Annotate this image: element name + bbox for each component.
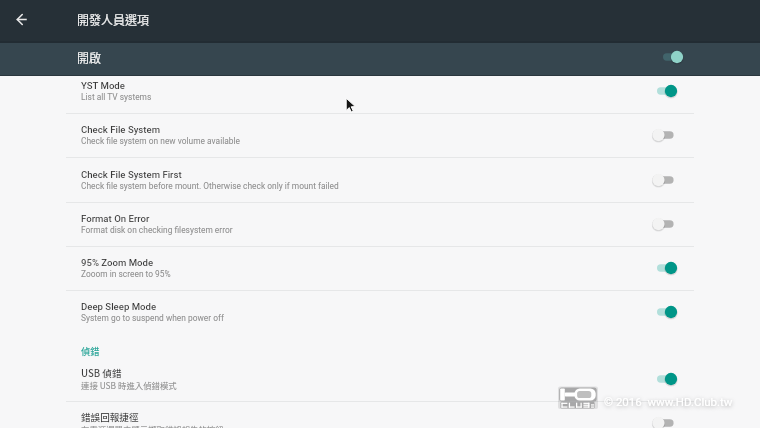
staticText: 開發人員選項 bbox=[77, 11, 150, 28]
button[interactable]: Toggle developer options bbox=[649, 39, 691, 74]
button[interactable]: Deep Sleep Mode bbox=[0, 290, 760, 334]
button[interactable]: Format On Error bbox=[0, 202, 760, 246]
staticText: 連接 USB 時進入偵錯模式 bbox=[81, 379, 177, 391]
staticText: 開啟 bbox=[77, 49, 102, 66]
button[interactable]: 錯誤回報捷徑 bbox=[0, 401, 760, 428]
staticText: © 2016 www.HD.Club.tw bbox=[604, 395, 733, 408]
button[interactable]: Format On Error bbox=[643, 202, 685, 246]
staticText: YST Mode bbox=[81, 80, 125, 91]
button[interactable]: Check File System bbox=[0, 113, 760, 157]
button[interactable]: Deep Sleep Mode bbox=[643, 290, 685, 334]
staticText: List all TV systems bbox=[81, 92, 152, 102]
staticText: 95% Zoom Mode bbox=[81, 257, 154, 268]
staticText: Check file system on new volume availabl… bbox=[81, 136, 240, 146]
staticText: Format disk on checking filesystem error bbox=[81, 225, 233, 235]
staticText: Format On Error bbox=[81, 213, 150, 224]
button[interactable]: Check File System First bbox=[0, 158, 760, 202]
staticText: Check File System First bbox=[81, 169, 182, 180]
staticText: USB 偵錯 bbox=[81, 366, 122, 380]
staticText: System go to suspend when power off bbox=[81, 313, 224, 323]
button[interactable]: Check File System First bbox=[643, 158, 685, 202]
button[interactable]: YST Mode bbox=[0, 69, 760, 113]
staticText: Deep Sleep Mode bbox=[81, 301, 157, 312]
staticText: Check File System bbox=[81, 124, 160, 135]
staticText: Zooom in screen to 95% bbox=[81, 269, 171, 279]
staticText: Check file system before mount. Otherwis… bbox=[81, 181, 339, 191]
button[interactable]: USB 偵錯 bbox=[643, 357, 685, 401]
staticText: 在電源選單中顯示擷取錯誤報告的按鈕 bbox=[81, 423, 224, 428]
button[interactable]: USB 偵錯 bbox=[0, 357, 760, 401]
button[interactable]: Check File System bbox=[643, 113, 685, 157]
button[interactable]: 95% Zoom Mode bbox=[0, 246, 760, 290]
button[interactable]: YST Mode bbox=[643, 69, 685, 113]
button[interactable]: 錯誤回報捷徑 bbox=[643, 401, 685, 428]
staticText: 偵錯 bbox=[81, 344, 100, 357]
button[interactable]: 95% Zoom Mode bbox=[643, 246, 685, 290]
staticText: 錯誤回報捷徑 bbox=[81, 410, 139, 424]
button[interactable]: Back bbox=[7, 5, 36, 34]
